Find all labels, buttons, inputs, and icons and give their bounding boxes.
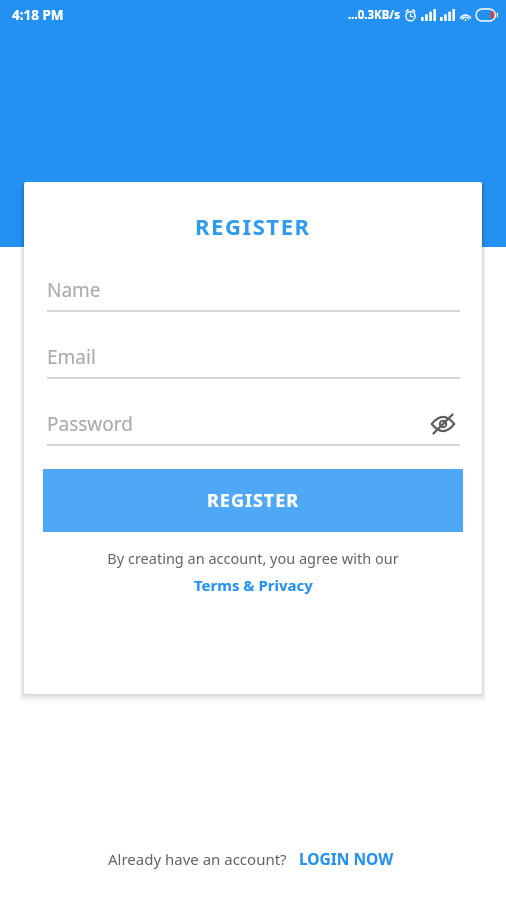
button[interactable]: Terms & Privacy <box>190 574 317 596</box>
staticText: Already have an account? <box>108 849 287 869</box>
button[interactable]: LOGIN NOW <box>295 845 398 872</box>
staticText: Password <box>47 411 133 437</box>
button[interactable]: Show password <box>426 407 460 441</box>
button[interactable]: Name <box>47 270 460 312</box>
staticText: 4:18 PM <box>12 6 64 24</box>
staticText: REGISTER <box>207 488 300 513</box>
staticText: ...0.3KB/s <box>348 7 400 23</box>
staticText: By creating an account, you agree with o… <box>107 548 399 568</box>
button[interactable]: Email <box>47 337 460 379</box>
staticText: REGISTER <box>195 211 311 241</box>
button[interactable]: REGISTER <box>43 469 463 532</box>
staticText: Email <box>47 344 96 370</box>
staticText: Name <box>47 277 101 303</box>
staticText: Terms & Privacy <box>194 575 313 595</box>
staticText: LOGIN NOW <box>299 848 394 869</box>
button[interactable]: Password <box>47 404 460 446</box>
